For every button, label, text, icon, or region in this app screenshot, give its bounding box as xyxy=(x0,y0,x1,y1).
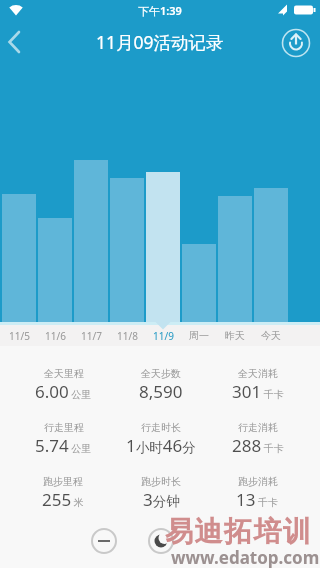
staticText: 11/6 xyxy=(45,329,66,343)
staticText: 行走时长 xyxy=(141,421,181,434)
staticText: 昨天 xyxy=(225,329,245,342)
button[interactable]: 行走时长 xyxy=(126,421,196,457)
staticText: 11/7 xyxy=(81,329,102,343)
staticText: 5.74 公里 xyxy=(35,434,92,457)
button[interactable]: 行走消耗 xyxy=(232,421,284,457)
staticText: 301 千卡 xyxy=(232,380,284,403)
staticText: 13 千卡 xyxy=(236,488,279,511)
staticText: 跑步时长 xyxy=(141,475,181,488)
staticText: 易迪拓培训 xyxy=(165,514,313,549)
staticText: 11/8 xyxy=(117,329,138,343)
button[interactable]: 全天消耗 xyxy=(232,367,284,403)
staticText: 6.00 公里 xyxy=(35,380,92,403)
staticText: 跑步里程 xyxy=(43,475,83,488)
button[interactable] xyxy=(148,528,174,554)
staticText: 下午1:39 xyxy=(138,3,182,18)
staticText: 周一 xyxy=(189,329,209,342)
button[interactable]: 11/7 xyxy=(73,325,109,346)
button[interactable]: 11/6 xyxy=(37,325,73,346)
button[interactable]: 11/8 xyxy=(109,325,145,346)
staticText: 11/9 xyxy=(153,329,174,343)
staticText: www.edatop.com xyxy=(171,546,320,568)
button[interactable]: 昨天 xyxy=(217,325,253,346)
button[interactable]: 跑步里程 xyxy=(42,475,84,511)
button[interactable]: 周一 xyxy=(181,325,217,346)
button[interactable]: 行走里程 xyxy=(35,421,92,457)
button[interactable]: 今天 xyxy=(253,325,289,346)
button[interactable]: 全天步数 xyxy=(139,367,183,403)
staticText: 全天消耗 xyxy=(238,367,278,380)
button[interactable]: 11/9 xyxy=(145,325,181,346)
button[interactable] xyxy=(91,528,117,554)
button[interactable] xyxy=(0,26,34,60)
staticText: 跑步消耗 xyxy=(238,475,278,488)
staticText: 255 米 xyxy=(42,488,84,511)
staticText: 8,590 xyxy=(139,380,183,403)
staticText: 全天步数 xyxy=(141,367,181,380)
staticText: 今天 xyxy=(261,329,281,342)
staticText: 行走消耗 xyxy=(238,421,278,434)
staticText: 3分钟 xyxy=(143,488,180,511)
staticText: 11月09活动记录 xyxy=(96,30,224,54)
button[interactable] xyxy=(280,27,312,59)
staticText: 行走里程 xyxy=(44,421,84,434)
button[interactable]: 跑步消耗 xyxy=(236,475,279,511)
button[interactable]: 跑步时长 xyxy=(141,475,181,511)
staticText: 1小时46分 xyxy=(126,434,196,457)
staticText: 全天里程 xyxy=(44,367,84,380)
button[interactable]: 11/5 xyxy=(1,325,37,346)
staticText: 288 千卡 xyxy=(232,434,284,457)
button[interactable]: 全天里程 xyxy=(35,367,92,403)
staticText: 11/5 xyxy=(9,329,30,343)
